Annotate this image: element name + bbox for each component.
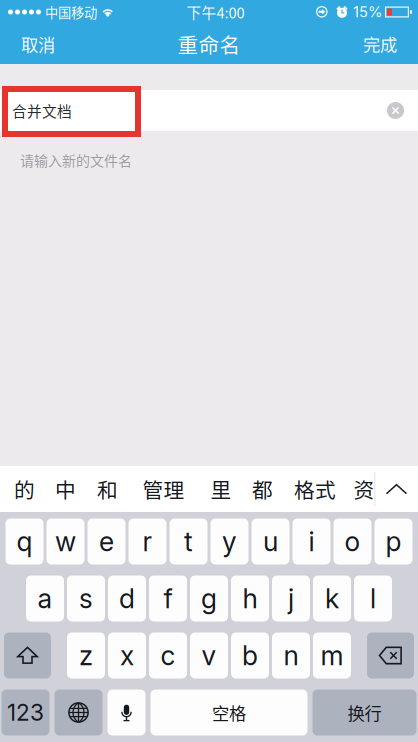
staticText: 里: [210, 474, 231, 504]
button[interactable]: 的: [0, 466, 49, 512]
staticText: 换行: [347, 700, 381, 725]
button[interactable]: i: [292, 518, 330, 564]
button[interactable]: 中: [49, 466, 81, 512]
staticText: t: [184, 525, 193, 558]
staticText: d: [119, 582, 135, 615]
button[interactable]: 合并文档: [0, 90, 418, 131]
button[interactable]: 管理: [133, 466, 193, 512]
button[interactable]: 资: [353, 466, 374, 512]
staticText: n: [283, 639, 298, 672]
staticText: 15%: [353, 3, 382, 21]
staticText: 取消: [21, 31, 55, 57]
staticText: f: [163, 582, 172, 615]
button[interactable]: z: [67, 632, 105, 678]
staticText: q: [16, 525, 32, 558]
button[interactable]: Shift: [4, 632, 51, 678]
button[interactable]: h: [231, 575, 269, 621]
staticText: y: [222, 525, 237, 558]
button[interactable]: c: [149, 632, 187, 678]
button[interactable]: More candidates: [375, 466, 417, 512]
button[interactable]: 取消: [0, 24, 91, 64]
staticText: v: [201, 639, 216, 672]
staticText: 请输入新的文件名: [20, 150, 132, 170]
button[interactable]: 空格: [150, 689, 307, 735]
button[interactable]: o: [333, 518, 371, 564]
button[interactable]: n: [272, 632, 310, 678]
staticText: o: [344, 525, 360, 558]
button[interactable]: j: [272, 575, 310, 621]
button[interactable]: w: [46, 518, 84, 564]
button[interactable]: b: [231, 632, 269, 678]
staticText: e: [99, 525, 114, 558]
button[interactable]: a: [26, 575, 64, 621]
staticText: l: [370, 582, 376, 615]
button[interactable]: q: [5, 518, 43, 564]
button[interactable]: 都: [248, 466, 276, 512]
button[interactable]: 格式: [276, 466, 353, 512]
button[interactable]: Return: [312, 689, 416, 735]
button[interactable]: d: [108, 575, 146, 621]
staticText: w: [55, 525, 76, 558]
staticText: u: [263, 525, 278, 558]
button[interactable]: y: [210, 518, 248, 564]
button[interactable]: 和: [81, 466, 133, 512]
staticText: x: [120, 639, 134, 672]
staticText: b: [242, 639, 258, 672]
staticText: k: [325, 582, 339, 615]
button[interactable]: e: [87, 518, 125, 564]
button[interactable]: g: [190, 575, 228, 621]
button[interactable]: s: [67, 575, 105, 621]
button[interactable]: Numbers: [1, 689, 49, 735]
staticText: s: [79, 582, 93, 615]
button[interactable]: l: [354, 575, 392, 621]
staticText: 格式: [294, 474, 336, 504]
button[interactable]: t: [169, 518, 207, 564]
staticText: h: [242, 582, 257, 615]
staticText: 中国移动: [45, 2, 97, 22]
staticText: 和: [97, 474, 118, 504]
button[interactable]: Switch keyboard: [54, 689, 102, 735]
staticText: 资: [353, 474, 374, 504]
button[interactable]: Dictation: [107, 689, 145, 735]
staticText: 完成: [363, 31, 397, 57]
button[interactable]: 完成: [327, 24, 418, 64]
staticText: 下午4:00: [186, 1, 244, 23]
button[interactable]: u: [251, 518, 289, 564]
button[interactable]: 里: [193, 466, 248, 512]
staticText: m: [320, 639, 343, 672]
staticText: 空格: [212, 700, 246, 725]
staticText: j: [288, 582, 294, 615]
staticText: 管理: [142, 474, 184, 504]
button[interactable]: k: [313, 575, 351, 621]
staticText: a: [37, 582, 52, 615]
staticText: 合并文档: [12, 100, 72, 121]
button[interactable]: v: [190, 632, 228, 678]
staticText: 123: [7, 699, 44, 726]
button[interactable]: p: [374, 518, 412, 564]
staticText: 重命名: [177, 29, 240, 59]
staticText: g: [201, 582, 217, 615]
button[interactable]: m: [313, 632, 351, 678]
staticText: 的: [14, 474, 35, 504]
staticText: r: [142, 525, 152, 558]
button[interactable]: r: [128, 518, 166, 564]
staticText: 中: [55, 474, 76, 504]
button[interactable]: f: [149, 575, 187, 621]
staticText: i: [308, 525, 314, 558]
staticText: c: [160, 639, 175, 672]
staticText: z: [79, 639, 93, 672]
button[interactable]: Delete: [367, 632, 414, 678]
staticText: p: [385, 525, 401, 558]
button[interactable]: x: [108, 632, 146, 678]
staticText: 都: [252, 474, 273, 504]
